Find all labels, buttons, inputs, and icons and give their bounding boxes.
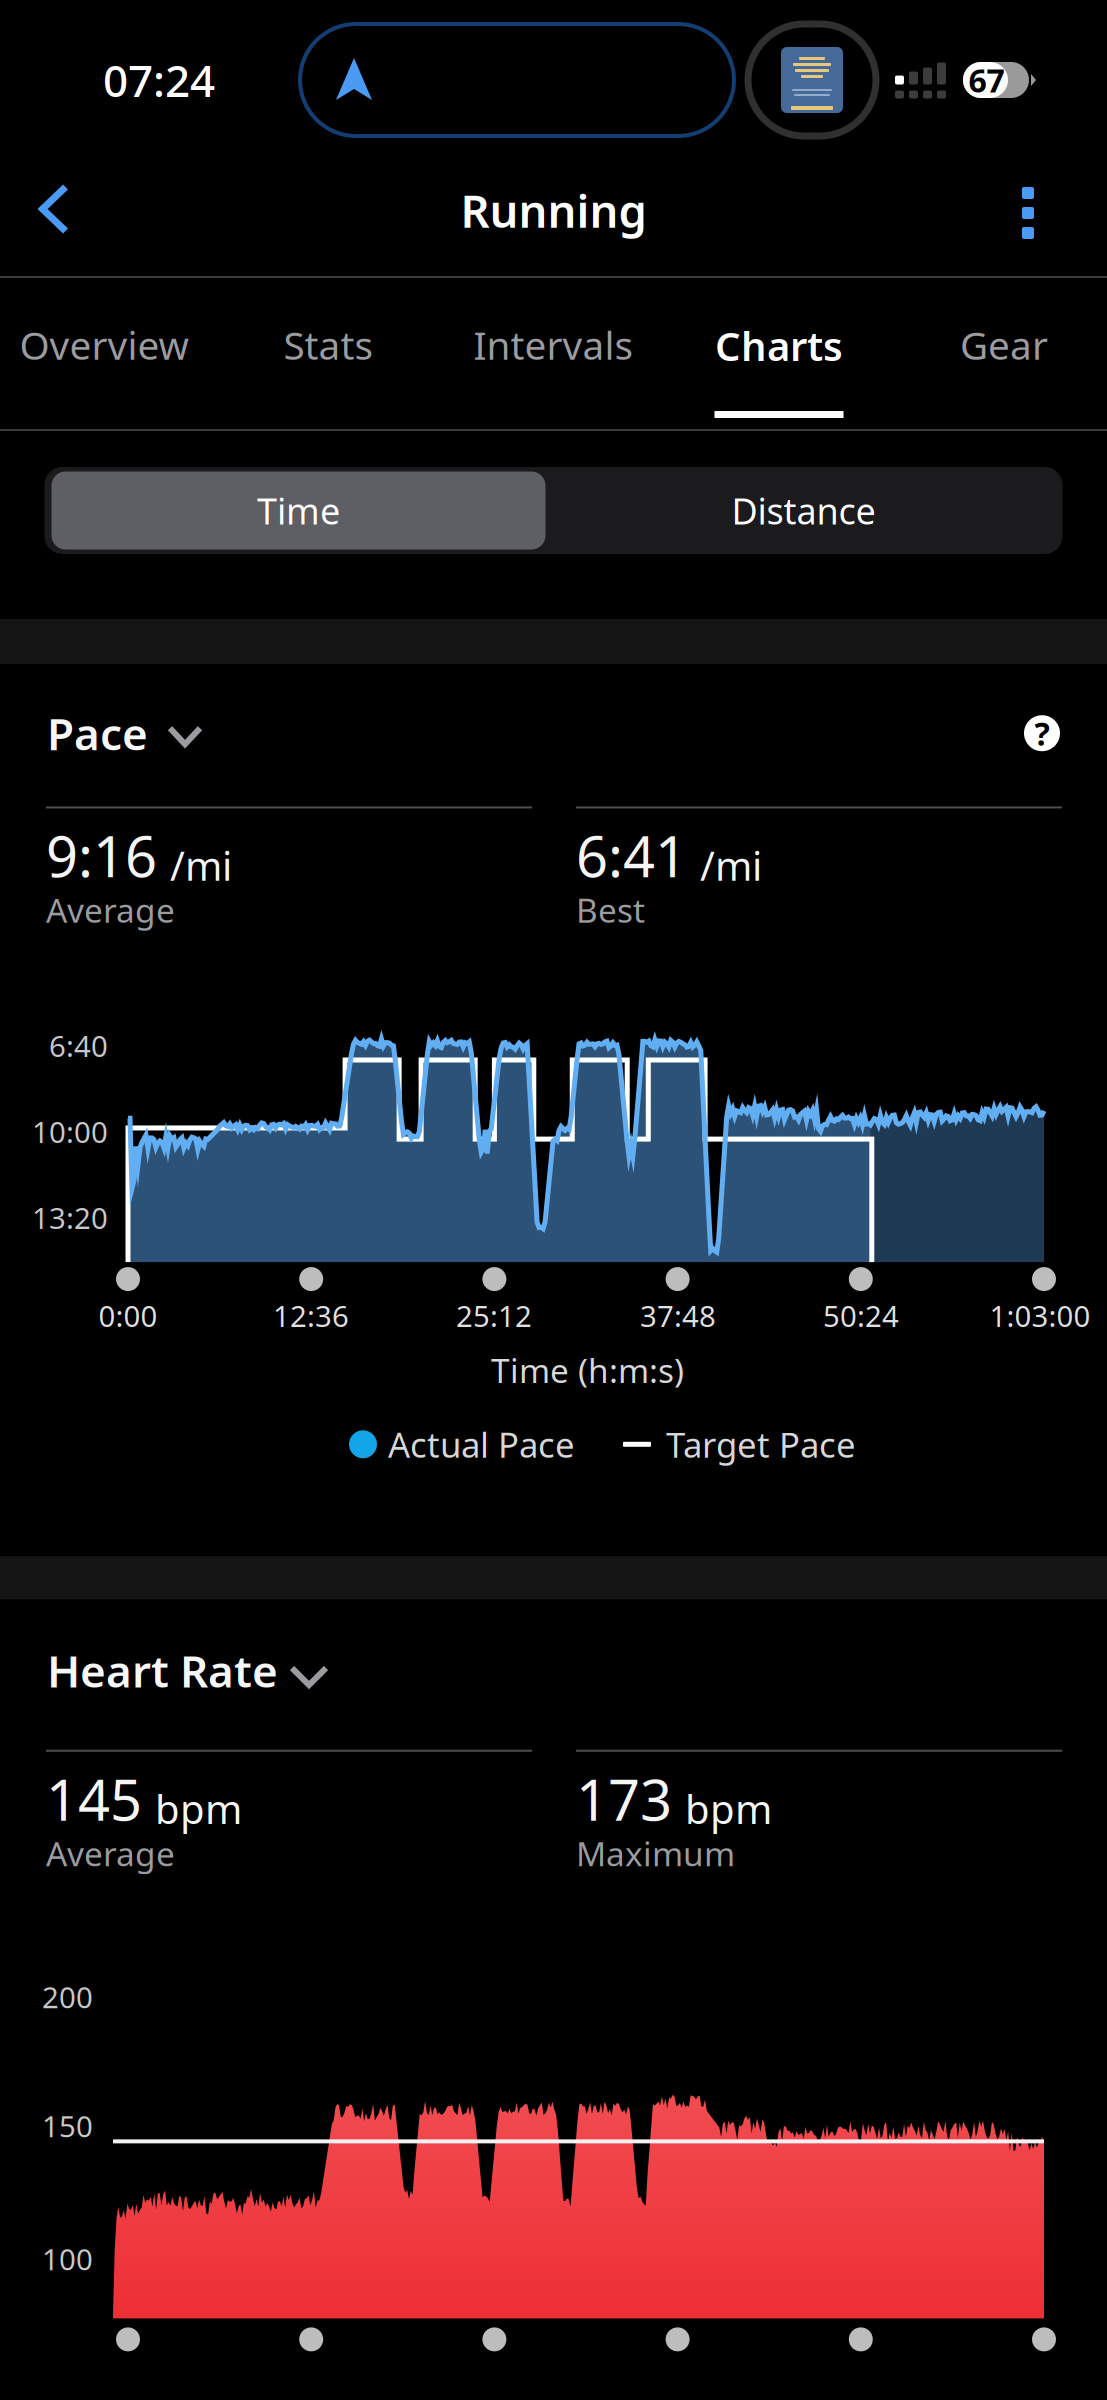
button[interactable]: Distance — [545, 471, 1061, 549]
staticText: 6:41 — [576, 818, 687, 893]
staticText: 10:00 — [32, 1112, 108, 1151]
staticText: Heart Rate — [47, 1641, 278, 1700]
button[interactable]: Intervals — [449, 278, 658, 429]
staticText: 12:36 — [273, 1296, 349, 1335]
staticText: Overview — [19, 319, 188, 370]
staticText: Stats — [283, 319, 373, 370]
staticText: bpm — [685, 1782, 772, 1835]
staticText: 67 — [968, 59, 1004, 101]
staticText: bpm — [155, 1782, 242, 1835]
staticText: Time (h:m:s) — [491, 1348, 684, 1392]
staticText: 25:12 — [456, 1296, 532, 1335]
staticText: 6:40 — [49, 1026, 108, 1065]
staticText: Target Pace — [666, 1421, 856, 1467]
button[interactable]: Charts — [658, 278, 900, 429]
button[interactable]: Back — [0, 160, 108, 276]
button[interactable]: Help — [1018, 709, 1066, 757]
staticText: ? — [1034, 712, 1049, 754]
button[interactable]: Gear — [900, 278, 1107, 429]
staticText: Time — [257, 487, 340, 534]
staticText: 100 — [42, 2239, 93, 2278]
staticText: 145 — [46, 1762, 142, 1836]
staticText: /mi — [700, 839, 762, 892]
staticText: 07:24 — [103, 51, 215, 109]
staticText: Distance — [731, 487, 875, 534]
staticText: Charts — [715, 319, 843, 372]
button[interactable]: More options — [949, 160, 1107, 276]
staticText: 173 — [576, 1762, 672, 1836]
staticText: Intervals — [473, 319, 633, 370]
staticText: 13:20 — [32, 1198, 108, 1237]
staticText: Average — [46, 888, 175, 932]
staticText: 9:16 — [46, 818, 157, 893]
staticText: Pace — [47, 704, 148, 762]
staticText: 150 — [42, 2106, 93, 2145]
staticText: 1:03:00 — [989, 1296, 1090, 1335]
staticText: Gear — [960, 319, 1048, 370]
button[interactable]: Heart Rate — [0, 1641, 1107, 1700]
staticText: 50:24 — [823, 1296, 899, 1335]
staticText: Running — [460, 180, 646, 240]
button[interactable]: Overview — [0, 278, 208, 429]
staticText: Maximum — [576, 1831, 735, 1875]
button[interactable]: Time — [51, 471, 545, 549]
button[interactable]: Stats — [208, 278, 449, 429]
staticText: Actual Pace — [388, 1421, 575, 1467]
staticText: Average — [46, 1831, 175, 1875]
button[interactable]: Pace — [47, 704, 203, 762]
staticText: 200 — [42, 1977, 93, 2016]
staticText: 37:48 — [640, 1296, 716, 1335]
staticText: Best — [576, 888, 645, 932]
staticText: /mi — [170, 839, 232, 892]
staticText: 0:00 — [98, 1296, 157, 1335]
